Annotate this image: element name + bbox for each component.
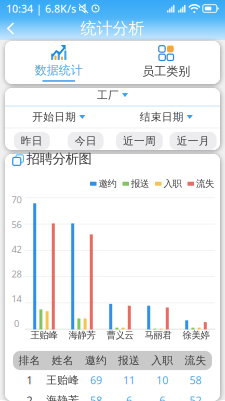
- staticText: 今日: [75, 134, 97, 147]
- staticText: 28: [11, 268, 21, 280]
- staticText: 6: [159, 393, 165, 401]
- staticText: 马丽君: [144, 329, 171, 341]
- staticText: 70: [11, 193, 21, 206]
- staticText: 邀约: [98, 178, 116, 189]
- staticText: 6: [126, 393, 132, 401]
- staticText: 海静芳: [68, 329, 95, 341]
- staticText: 1: [27, 373, 33, 387]
- button[interactable]: 返回: [0, 17, 22, 39]
- staticText: 员工类别: [142, 64, 190, 79]
- staticText: 统计分析: [80, 19, 144, 38]
- staticText: 42: [11, 243, 21, 255]
- staticText: 11: [123, 373, 135, 387]
- staticText: 流失: [184, 354, 206, 367]
- button[interactable]: 结束日期: [112, 106, 220, 127]
- staticText: 10: [156, 373, 168, 387]
- staticText: 56: [11, 218, 21, 231]
- staticText: 邀约: [85, 354, 107, 367]
- staticText: 招聘分析图: [26, 151, 91, 167]
- button[interactable]: 工厂: [5, 84, 220, 106]
- staticText: 58: [189, 373, 201, 387]
- staticText: 工厂: [97, 88, 119, 102]
- button[interactable]: 近一周: [116, 132, 163, 150]
- staticText: 徐美婷: [182, 329, 209, 341]
- staticText: 王贻峰: [46, 374, 79, 387]
- staticText: 海静芳: [46, 394, 79, 401]
- staticText: 入职: [151, 354, 173, 367]
- staticText: 0: [14, 317, 19, 329]
- staticText: 昨日: [21, 134, 43, 147]
- staticText: 58: [90, 393, 102, 401]
- staticText: 14: [11, 292, 21, 305]
- staticText: 报送: [118, 354, 140, 367]
- button[interactable]: 今日: [68, 132, 104, 150]
- staticText: 王贻峰: [30, 329, 57, 341]
- staticText: 流失: [196, 178, 214, 189]
- staticText: 报送: [131, 178, 149, 189]
- staticText: 结束日期: [140, 110, 184, 123]
- button[interactable]: 昨日: [14, 132, 50, 150]
- staticText: 姓名: [52, 354, 74, 367]
- staticText: 近一月: [177, 134, 210, 147]
- button[interactable]: 员工类别: [112, 41, 220, 84]
- button[interactable]: 开始日期: [5, 106, 112, 127]
- staticText: 开始日期: [32, 110, 76, 123]
- staticText: 2: [27, 393, 33, 401]
- staticText: 69: [90, 373, 102, 387]
- staticText: 曹义云: [106, 329, 133, 341]
- staticText: 52: [189, 393, 201, 401]
- staticText: 近一周: [123, 134, 156, 147]
- staticText: 排名: [19, 354, 41, 367]
- button[interactable]: 近一月: [170, 132, 217, 150]
- staticText: 入职: [163, 178, 181, 189]
- button[interactable]: 数据统计: [5, 41, 112, 84]
- staticText: 数据统计: [35, 63, 83, 78]
- staticText: 10:34 | 6.8K/s: [6, 1, 76, 16]
